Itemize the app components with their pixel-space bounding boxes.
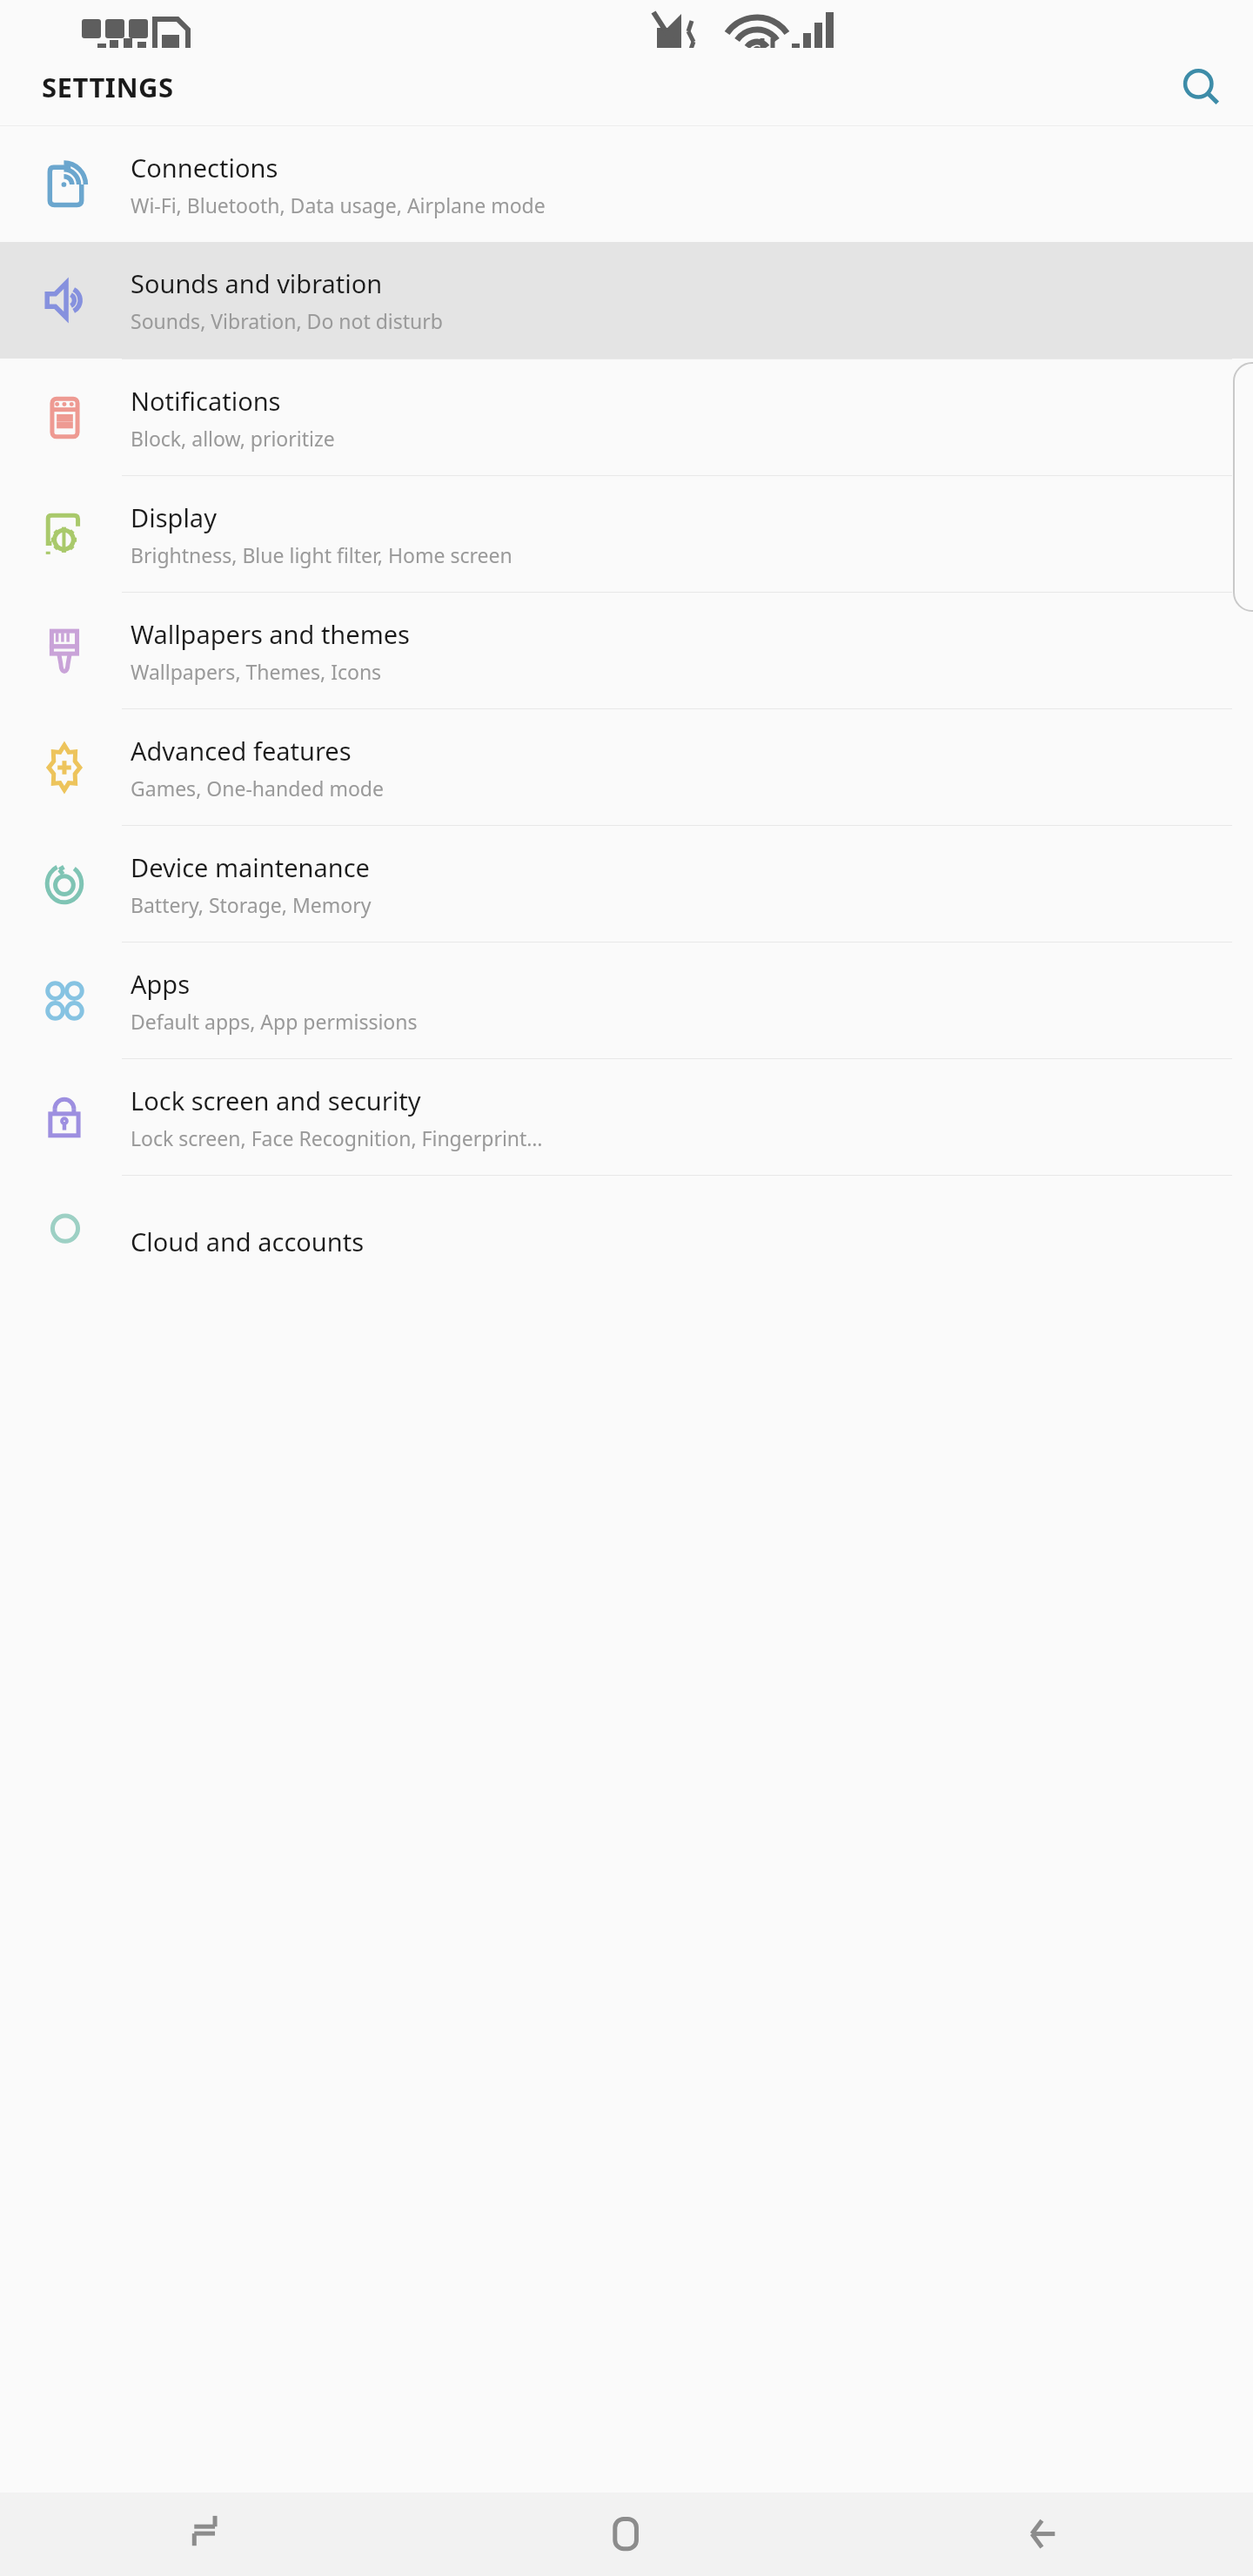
staticText: Connections <box>131 151 278 184</box>
staticText: Notifications <box>131 384 281 418</box>
staticText: Advanced features <box>131 734 352 768</box>
button[interactable]: Apps <box>0 943 1253 1058</box>
staticText: Sounds and vibration <box>131 266 383 300</box>
staticText: Lock screen, Face Recognition, Fingerpri… <box>131 1124 543 1151</box>
button[interactable]: Recents <box>122 2492 296 2576</box>
staticText: Cloud and accounts <box>131 1224 365 1258</box>
button[interactable]: Display <box>0 476 1253 592</box>
button[interactable]: Notifications <box>0 359 1253 475</box>
staticText: Wallpapers and themes <box>131 617 411 651</box>
staticText: Wi-Fi, Bluetooth, Data usage, Airplane m… <box>131 191 546 218</box>
button[interactable]: Lock screen and security <box>0 1059 1253 1175</box>
staticText: Sounds, Vibration, Do not disturb <box>131 307 443 334</box>
button[interactable]: Sounds and vibration <box>0 242 1253 359</box>
staticText: Games, One-handed mode <box>131 775 384 802</box>
button[interactable]: Advanced features <box>0 709 1253 825</box>
staticText: Brightness, Blue light filter, Home scre… <box>131 541 513 568</box>
staticText: Apps <box>131 967 191 1001</box>
button[interactable]: Back <box>957 2492 1131 2576</box>
button[interactable]: Device maintenance <box>0 826 1253 942</box>
staticText: Device maintenance <box>131 850 370 884</box>
button[interactable]: Connections <box>0 126 1253 242</box>
staticText: Lock screen and security <box>131 1083 421 1117</box>
button[interactable]: Search <box>1169 56 1232 118</box>
button[interactable]: Cloud and accounts <box>0 1176 1253 1254</box>
staticText: Battery, Storage, Memory <box>131 891 372 918</box>
staticText: Display <box>131 500 217 534</box>
staticText: SETTINGS <box>42 69 174 105</box>
staticText: Default apps, App permissions <box>131 1008 418 1035</box>
button[interactable]: Wallpapers and themes <box>0 593 1253 708</box>
staticText: Block, allow, prioritize <box>131 425 335 452</box>
staticText: Wallpapers, Themes, Icons <box>131 658 382 685</box>
button[interactable]: Home <box>539 2492 714 2576</box>
